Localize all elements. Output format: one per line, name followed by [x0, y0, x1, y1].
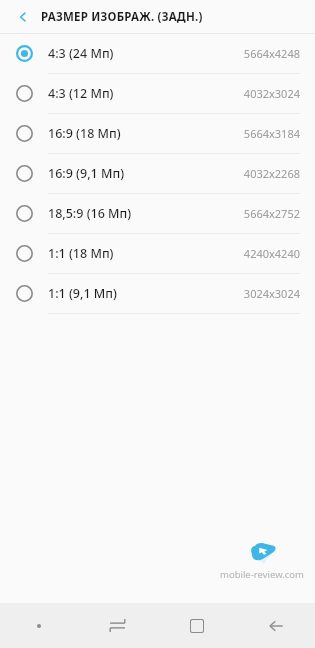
staticText: 4032x3024	[243, 86, 300, 101]
button[interactable]: 18,5:9 (16 Мп)	[0, 194, 315, 233]
staticText: 4032x2268	[243, 166, 300, 181]
button[interactable]: 4:3 (12 Мп)	[0, 74, 315, 113]
button[interactable]: Меню	[0, 603, 78, 648]
staticText: РАЗМЕР ИЗОБРАЖ. (ЗАДН.)	[41, 9, 203, 25]
button[interactable]: 16:9 (9,1 Мп)	[0, 154, 315, 193]
staticText: 1:1 (9,1 Мп)	[48, 285, 243, 302]
staticText: 5664x3184	[243, 126, 300, 141]
staticText: mobile-review.com	[220, 568, 304, 581]
button[interactable]: Домой	[157, 603, 236, 648]
staticText: 5664x2752	[243, 206, 300, 221]
button[interactable]: Назад	[236, 603, 315, 648]
staticText: 5664x4248	[243, 46, 300, 61]
staticText: 3024x3024	[243, 286, 300, 301]
staticText: 4:3 (24 Мп)	[48, 45, 243, 62]
staticText: 4240x4240	[243, 246, 300, 261]
staticText: 1:1 (18 Мп)	[48, 245, 243, 262]
button[interactable]: Назад	[9, 3, 37, 31]
button[interactable]: 16:9 (18 Мп)	[0, 114, 315, 153]
staticText: 4:3 (12 Мп)	[48, 85, 243, 102]
button[interactable]: 1:1 (9,1 Мп)	[0, 274, 315, 313]
staticText: 16:9 (18 Мп)	[48, 125, 243, 142]
button[interactable]: 1:1 (18 Мп)	[0, 234, 315, 273]
button[interactable]: Последние приложения	[78, 603, 157, 648]
staticText: 18,5:9 (16 Мп)	[48, 205, 243, 222]
button[interactable]: 4:3 (24 Мп)	[0, 34, 315, 73]
staticText: 16:9 (9,1 Мп)	[48, 165, 243, 182]
